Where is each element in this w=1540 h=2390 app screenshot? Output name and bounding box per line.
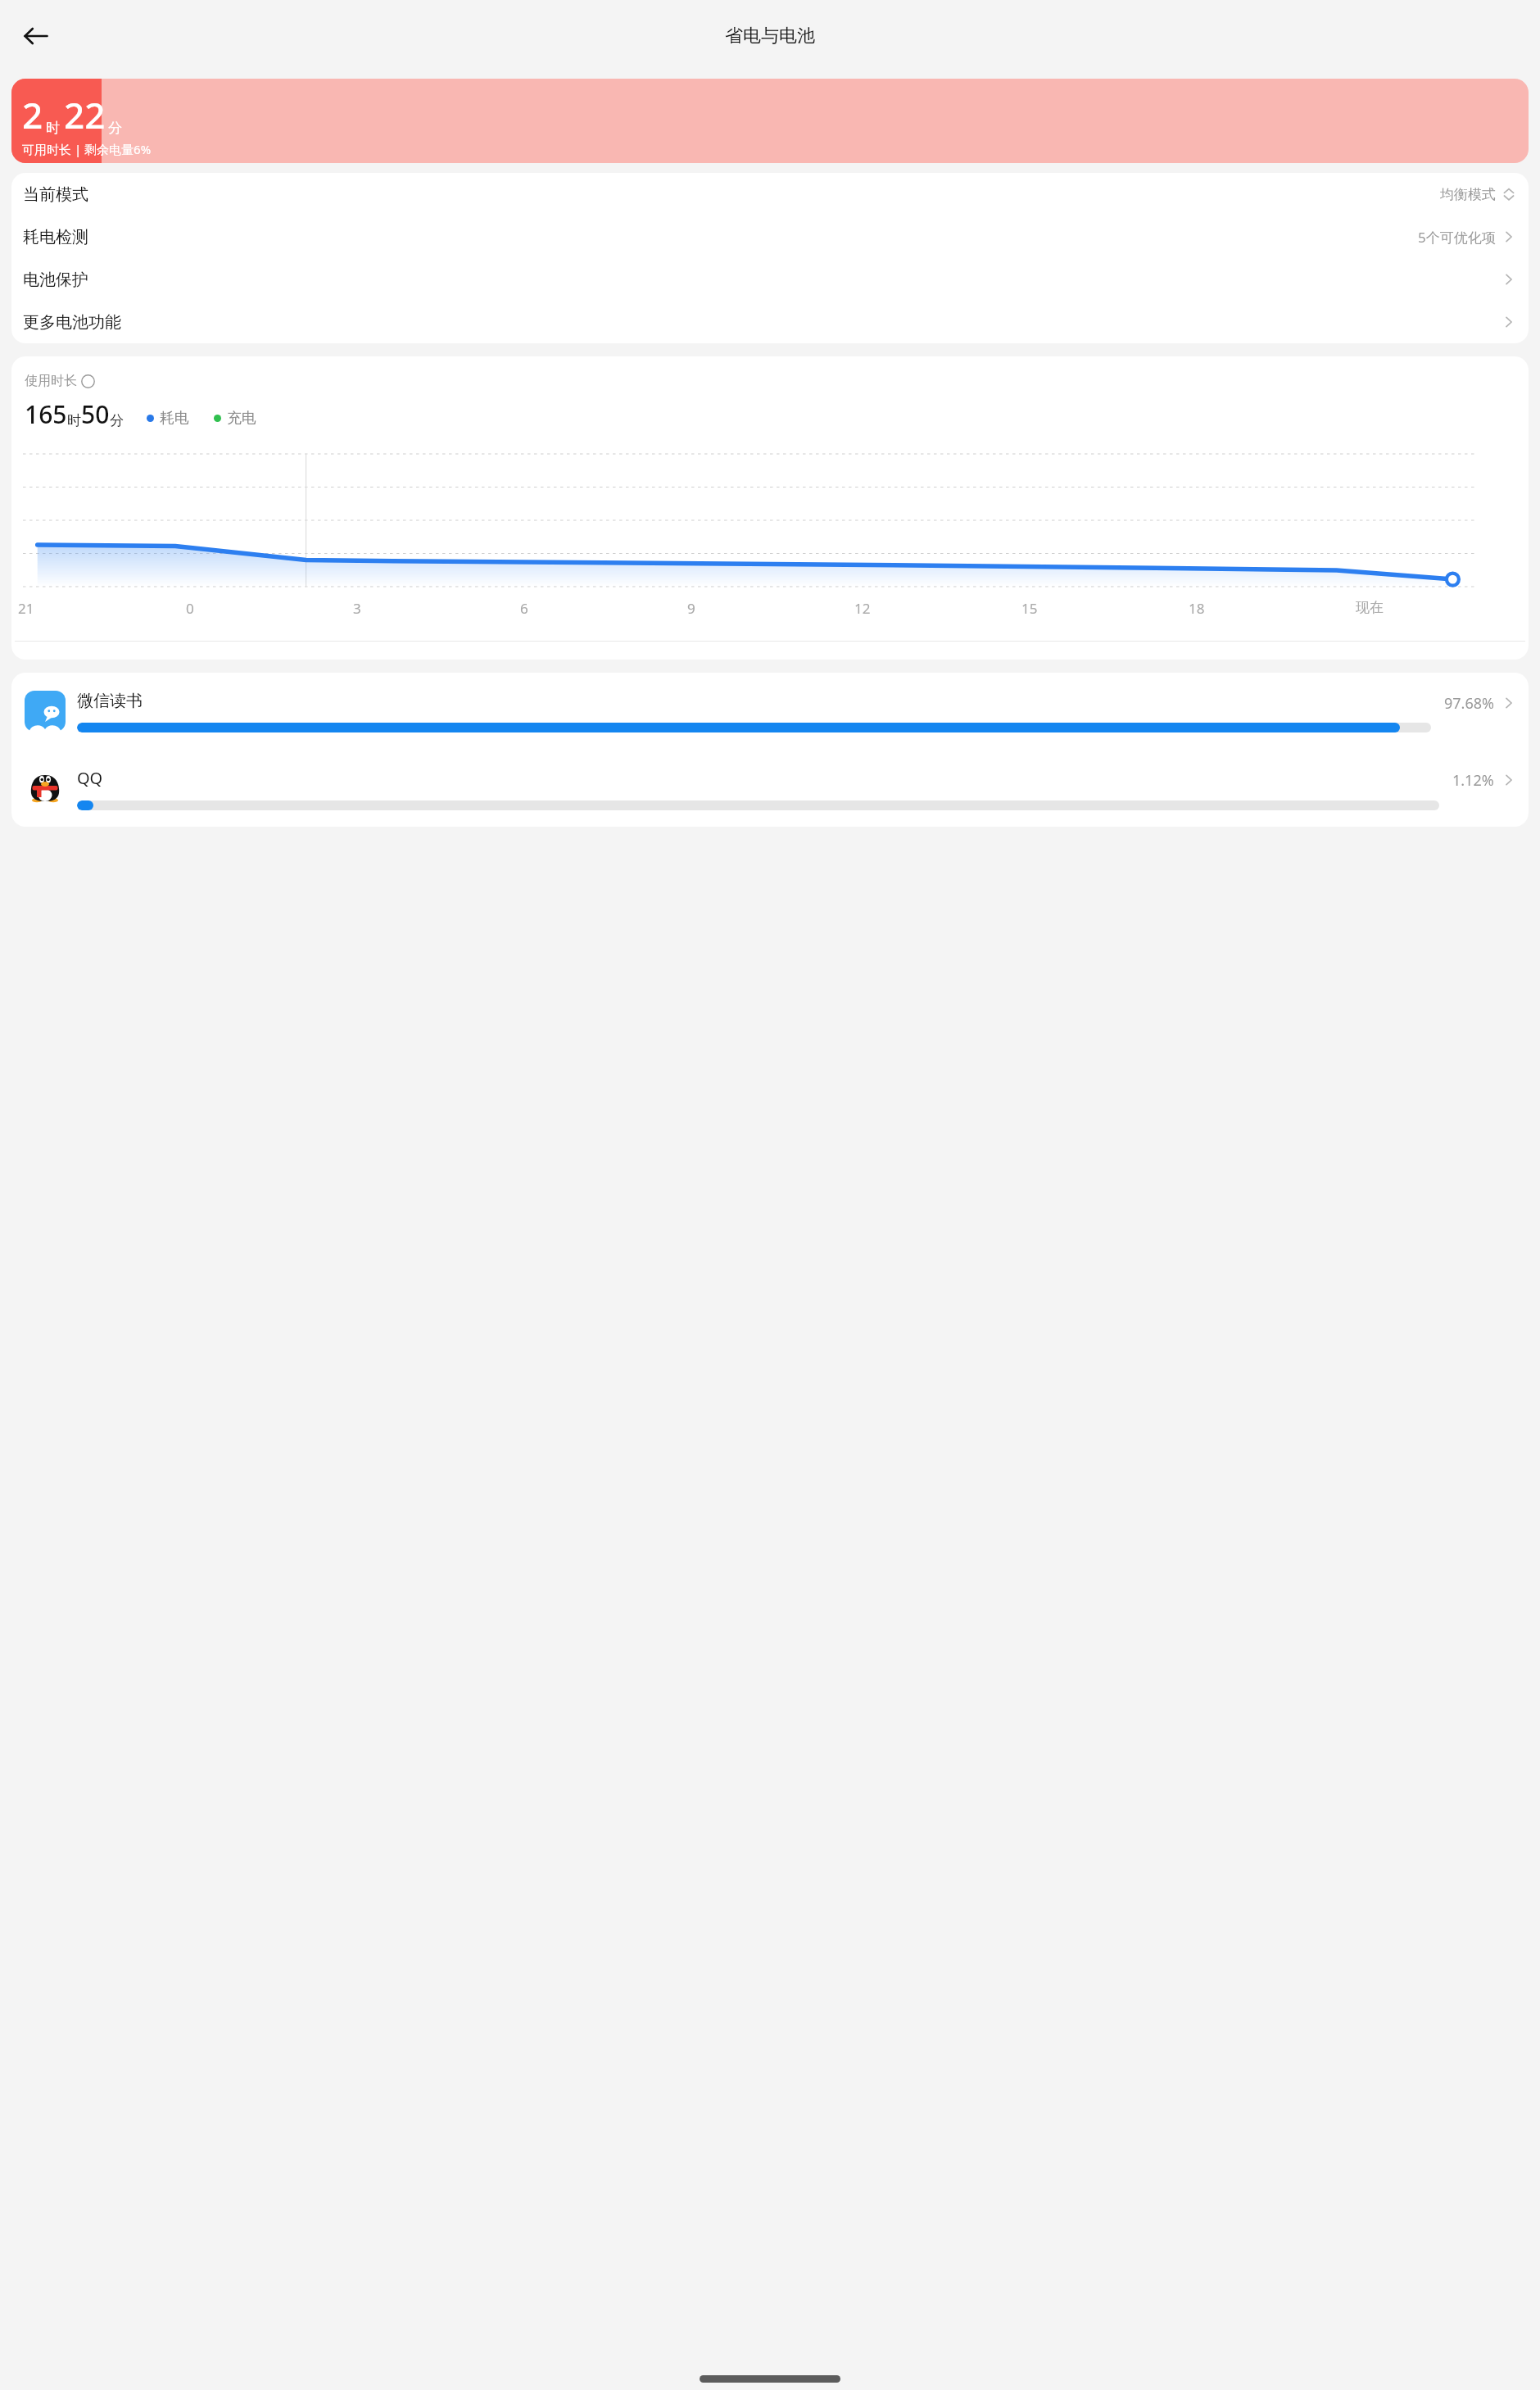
staticText: 使用时长 — [25, 373, 77, 389]
button[interactable]: QQ — [11, 750, 1529, 827]
staticText: 15 — [1021, 599, 1038, 618]
staticText: 165 — [25, 397, 67, 431]
staticText: 3 — [353, 599, 361, 618]
staticText: 21 — [18, 599, 34, 618]
staticText: 均衡模式 — [1440, 186, 1496, 203]
other: 帮助 — [81, 374, 95, 388]
staticText: 耗电检测 — [23, 227, 88, 247]
button[interactable]: 微信读书 — [11, 673, 1529, 750]
staticText: 充电 — [227, 409, 256, 428]
staticText: 22 — [64, 90, 106, 139]
staticText: 时 — [67, 412, 81, 429]
staticText: QQ — [77, 767, 103, 789]
staticText: 50 — [81, 397, 110, 431]
staticText: 6 — [520, 599, 528, 618]
button[interactable]: 当前模式 — [11, 173, 1529, 215]
staticText: 电池保护 — [23, 270, 88, 290]
staticText: 现在 — [1356, 599, 1384, 616]
staticText: 更多电池功能 — [23, 312, 121, 333]
staticText: 0 — [186, 599, 194, 618]
staticText: 分 — [110, 412, 124, 429]
staticText: 12 — [854, 599, 871, 618]
staticText: 省电与电池 — [725, 25, 815, 48]
button[interactable]: Back — [13, 13, 59, 59]
staticText: 2 — [22, 90, 43, 139]
staticText: 可用时长 | 剩余电量6% — [22, 141, 152, 157]
staticText: 97.68% — [1444, 693, 1494, 714]
staticText: 当前模式 — [23, 184, 88, 205]
button[interactable]: 耗电检测 — [11, 215, 1529, 258]
button[interactable]: 电池保护 — [11, 258, 1529, 301]
staticText: 1.12% — [1452, 770, 1494, 791]
staticText: 分 — [108, 120, 122, 137]
staticText: 9 — [687, 599, 695, 618]
staticText: 时 — [46, 120, 60, 137]
button[interactable]: 更多电池功能 — [11, 301, 1529, 343]
staticText: 微信读书 — [77, 691, 143, 711]
staticText: 18 — [1189, 599, 1205, 618]
staticText: 5个可优化项 — [1418, 228, 1496, 247]
button[interactable]: 2 — [11, 79, 1529, 163]
staticText: 耗电 — [160, 409, 189, 428]
